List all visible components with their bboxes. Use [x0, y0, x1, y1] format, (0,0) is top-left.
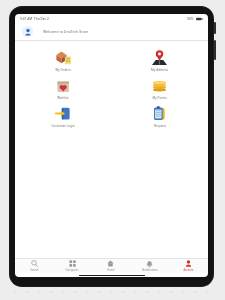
- staticText: Categories: [65, 268, 79, 272]
- staticText: Home: [107, 268, 115, 272]
- button[interactable]: Account: [169, 259, 208, 273]
- staticText: 9:41 AM Thu Dec 2: [20, 17, 49, 21]
- button[interactable]: Notifications: [130, 259, 169, 273]
- other: Customer Login: [55, 105, 72, 122]
- other: My Points: [151, 77, 168, 94]
- button[interactable]: My Orders: [15, 47, 111, 75]
- staticText: Request: [154, 124, 166, 128]
- button[interactable]: Categories: [53, 259, 91, 273]
- staticText: My Orders: [55, 68, 71, 72]
- other: Request: [151, 105, 168, 122]
- button[interactable]: My Address: [111, 47, 208, 75]
- other: My Address: [151, 49, 168, 66]
- staticText: Notifications: [142, 268, 158, 272]
- button[interactable]: Welcome to UnaTech Store: [15, 23, 208, 40]
- staticText: Account: [183, 268, 194, 272]
- button[interactable]: Home: [91, 259, 130, 273]
- staticText: Wishlist: [57, 96, 69, 100]
- staticText: My Points: [152, 96, 167, 100]
- button[interactable]: Search: [15, 259, 53, 273]
- staticText: Welcome to UnaTech Store: [43, 29, 89, 34]
- other: Wishlist: [55, 77, 72, 94]
- staticText: My Address: [151, 68, 168, 72]
- button[interactable]: My Points: [111, 75, 208, 103]
- button[interactable]: Wishlist: [15, 75, 111, 103]
- other: My Orders: [55, 49, 72, 66]
- staticText: Customer Login: [51, 124, 75, 128]
- button[interactable]: Customer Login: [15, 103, 111, 131]
- button[interactable]: Request: [111, 103, 208, 131]
- staticText: Search: [30, 268, 39, 272]
- staticText: 94%: [187, 17, 194, 21]
